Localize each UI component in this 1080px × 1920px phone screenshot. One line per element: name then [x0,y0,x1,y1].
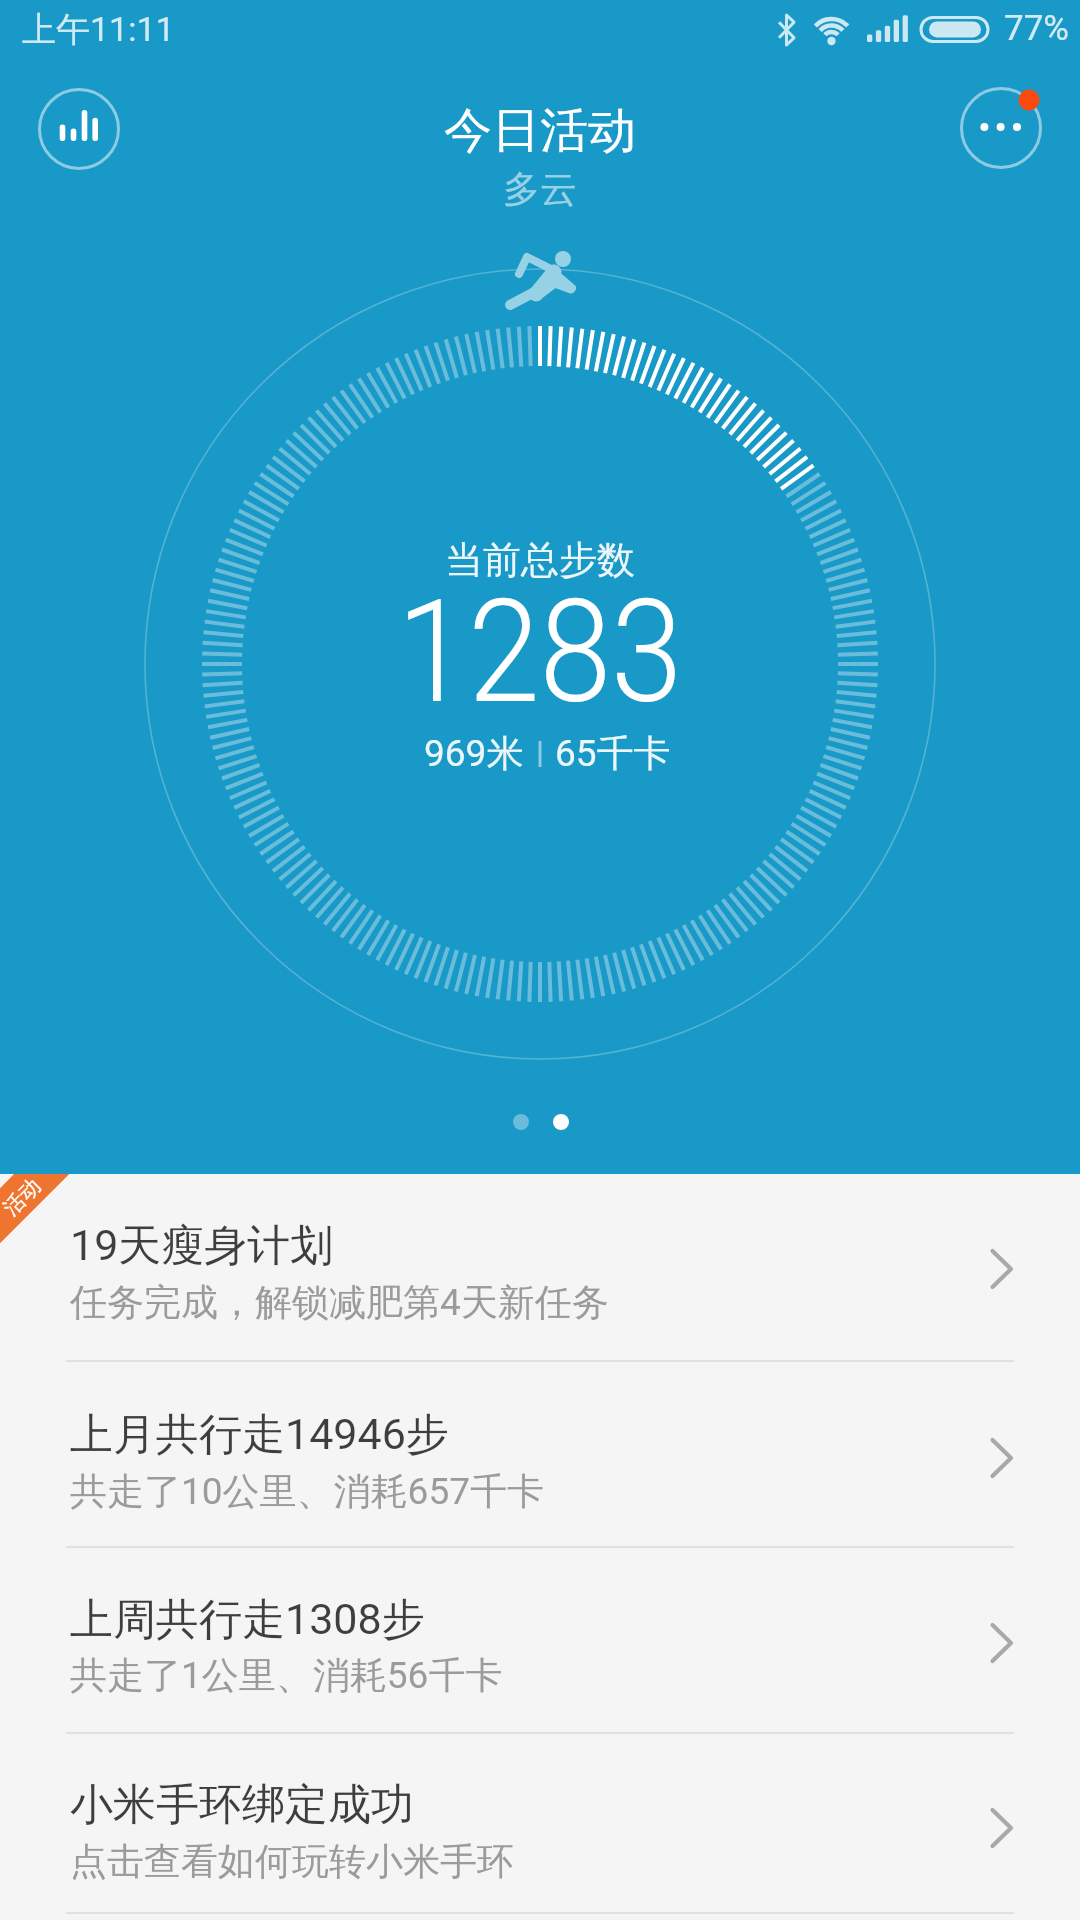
staticText: 上周共行走1308步 [70,1593,425,1647]
staticText: 969米 [424,730,524,777]
button[interactable] [0,1732,1080,1912]
staticText: 65千卡 [555,730,671,777]
button[interactable]: 活动 [0,1174,140,1314]
staticText: 上月共行走14946步 [70,1408,449,1462]
staticText: 77% [1004,8,1069,49]
staticText: 1283 [397,568,683,736]
staticText: 共走了10公里、消耗657千卡 [70,1468,544,1515]
staticText: 当前总步数 [445,536,635,584]
staticText: 多云 [503,166,577,213]
staticText: 点击查看如何玩转小米手环 [70,1838,514,1885]
button[interactable] [39,89,119,169]
staticText: 活动 [0,1174,46,1221]
button[interactable] [0,1360,1080,1546]
staticText: 19天瘦身计划 [70,1219,334,1273]
button[interactable] [0,1174,1080,1360]
staticText: 上午11:11 [22,8,175,51]
staticText: 任务完成，解锁减肥第4天新任务 [70,1279,609,1326]
staticText: 小米手环绑定成功 [70,1778,414,1832]
button[interactable] [0,1546,1080,1732]
staticText: 今日活动 [444,101,636,161]
staticText: 共走了1公里、消耗56千卡 [70,1652,503,1699]
button[interactable] [961,88,1041,168]
